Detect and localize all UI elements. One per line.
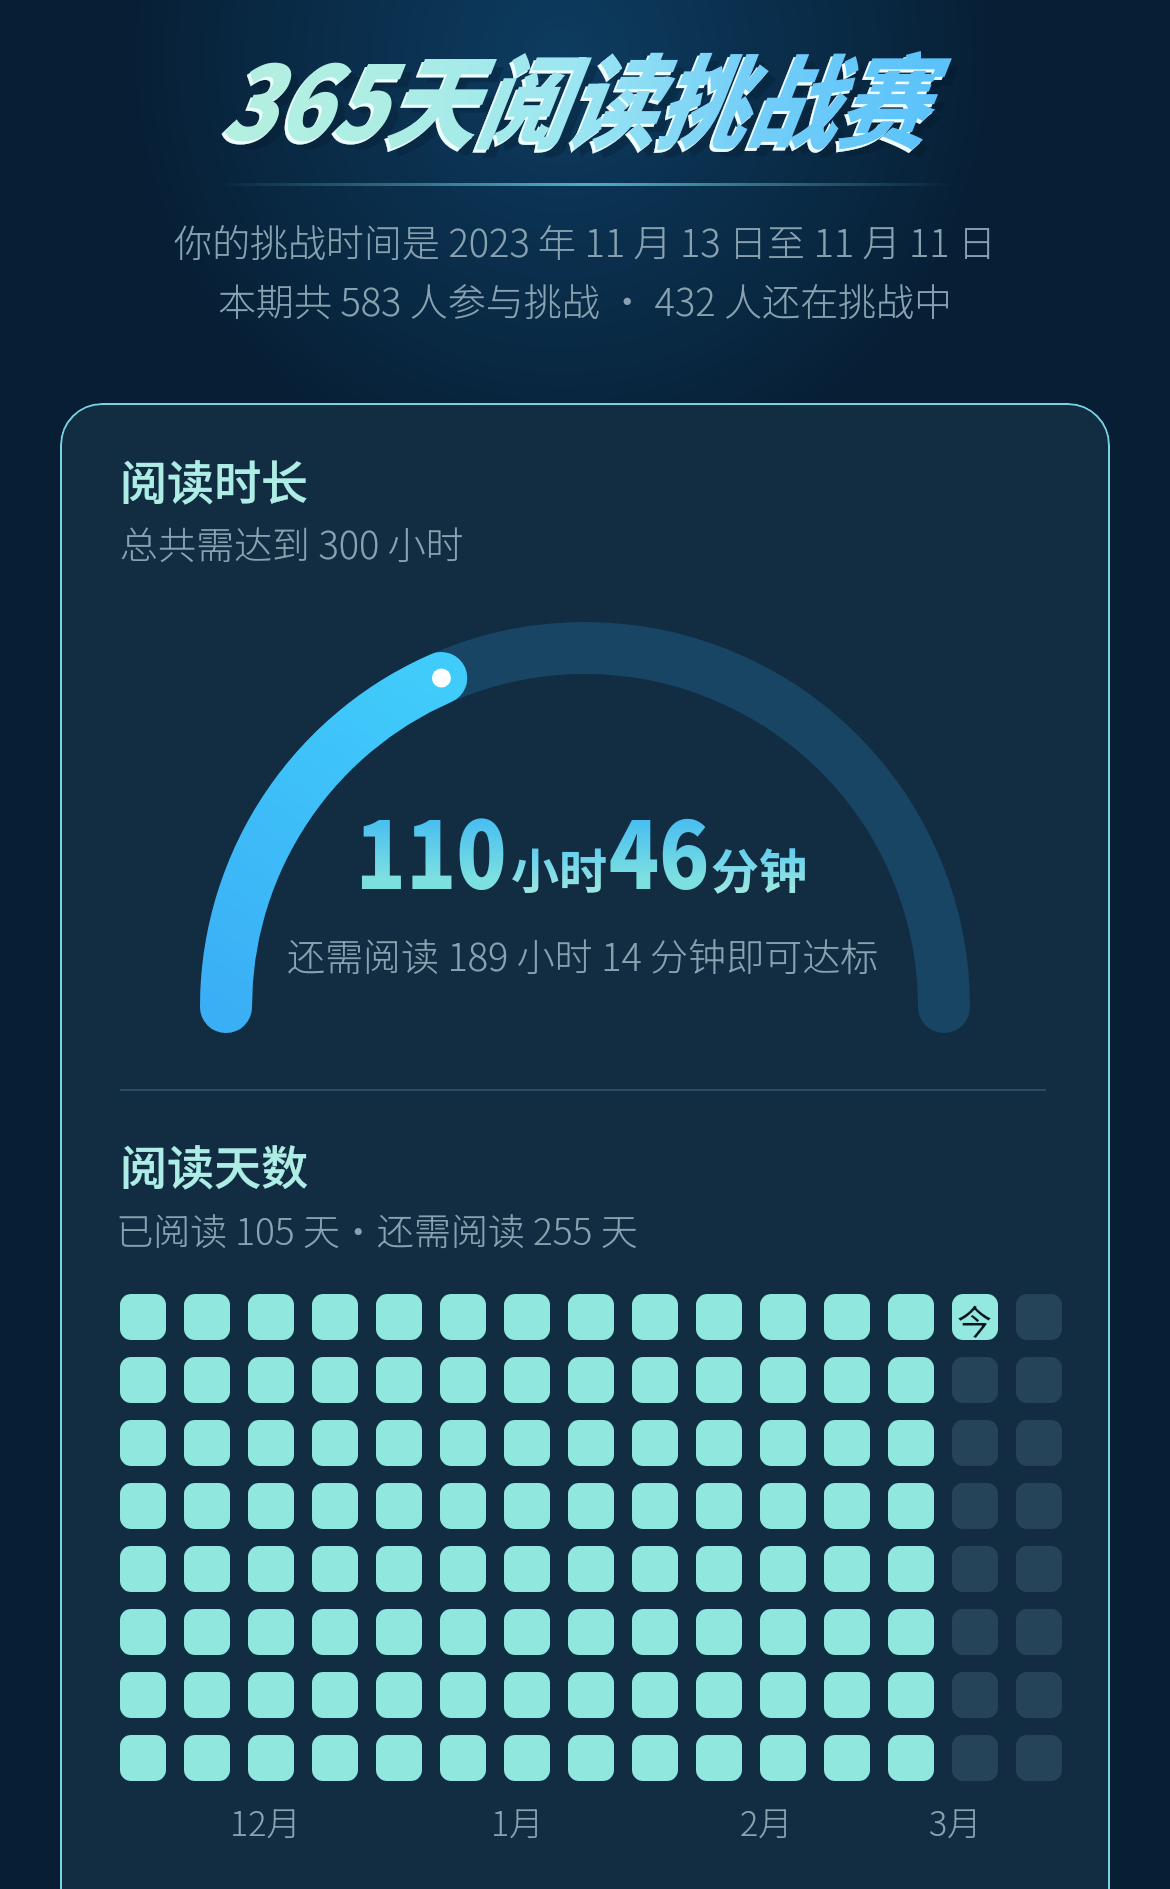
button[interactable] bbox=[312, 1609, 358, 1655]
button[interactable] bbox=[504, 1483, 550, 1529]
button[interactable] bbox=[1016, 1672, 1062, 1718]
button[interactable] bbox=[376, 1294, 422, 1340]
button[interactable] bbox=[888, 1609, 934, 1655]
button[interactable] bbox=[312, 1483, 358, 1529]
button[interactable] bbox=[312, 1420, 358, 1466]
button[interactable] bbox=[632, 1735, 678, 1781]
button[interactable] bbox=[120, 1483, 166, 1529]
button[interactable] bbox=[568, 1672, 614, 1718]
button[interactable] bbox=[824, 1420, 870, 1466]
button[interactable] bbox=[440, 1420, 486, 1466]
button[interactable] bbox=[248, 1672, 294, 1718]
button[interactable] bbox=[888, 1546, 934, 1592]
button[interactable] bbox=[952, 1735, 998, 1781]
button[interactable] bbox=[440, 1735, 486, 1781]
button[interactable] bbox=[376, 1609, 422, 1655]
button[interactable] bbox=[824, 1609, 870, 1655]
button[interactable] bbox=[760, 1546, 806, 1592]
button[interactable] bbox=[824, 1672, 870, 1718]
button[interactable] bbox=[312, 1294, 358, 1340]
button[interactable] bbox=[952, 1420, 998, 1466]
button[interactable] bbox=[120, 1420, 166, 1466]
button[interactable] bbox=[568, 1483, 614, 1529]
button[interactable] bbox=[248, 1735, 294, 1781]
button[interactable] bbox=[760, 1609, 806, 1655]
button[interactable] bbox=[248, 1294, 294, 1340]
button[interactable] bbox=[568, 1735, 614, 1781]
button[interactable] bbox=[632, 1357, 678, 1403]
button[interactable] bbox=[888, 1672, 934, 1718]
button[interactable] bbox=[952, 1672, 998, 1718]
button[interactable] bbox=[568, 1294, 614, 1340]
button[interactable] bbox=[504, 1420, 550, 1466]
button[interactable] bbox=[504, 1546, 550, 1592]
button[interactable] bbox=[504, 1672, 550, 1718]
button[interactable] bbox=[376, 1546, 422, 1592]
button[interactable] bbox=[824, 1483, 870, 1529]
button[interactable] bbox=[760, 1672, 806, 1718]
button[interactable] bbox=[120, 1357, 166, 1403]
button[interactable] bbox=[1016, 1357, 1062, 1403]
button[interactable] bbox=[888, 1357, 934, 1403]
button[interactable] bbox=[376, 1483, 422, 1529]
button[interactable] bbox=[696, 1546, 742, 1592]
button[interactable] bbox=[1016, 1735, 1062, 1781]
button[interactable] bbox=[120, 1735, 166, 1781]
button[interactable] bbox=[696, 1609, 742, 1655]
button[interactable] bbox=[1016, 1294, 1062, 1340]
button[interactable] bbox=[248, 1483, 294, 1529]
button[interactable] bbox=[376, 1420, 422, 1466]
button[interactable] bbox=[952, 1609, 998, 1655]
button[interactable] bbox=[952, 1357, 998, 1403]
button[interactable] bbox=[568, 1420, 614, 1466]
button[interactable] bbox=[696, 1483, 742, 1529]
button[interactable] bbox=[696, 1357, 742, 1403]
button[interactable] bbox=[696, 1294, 742, 1340]
button[interactable] bbox=[120, 1609, 166, 1655]
button[interactable] bbox=[120, 1294, 166, 1340]
button[interactable] bbox=[632, 1420, 678, 1466]
button[interactable] bbox=[184, 1546, 230, 1592]
button[interactable] bbox=[440, 1483, 486, 1529]
button[interactable] bbox=[824, 1357, 870, 1403]
button[interactable] bbox=[888, 1294, 934, 1340]
button[interactable] bbox=[760, 1483, 806, 1529]
button[interactable] bbox=[504, 1735, 550, 1781]
button[interactable] bbox=[824, 1735, 870, 1781]
button[interactable] bbox=[440, 1546, 486, 1592]
button[interactable] bbox=[504, 1357, 550, 1403]
button[interactable] bbox=[888, 1483, 934, 1529]
button[interactable] bbox=[312, 1357, 358, 1403]
button[interactable] bbox=[120, 1672, 166, 1718]
button[interactable] bbox=[120, 1546, 166, 1592]
button[interactable] bbox=[1016, 1609, 1062, 1655]
button[interactable] bbox=[824, 1294, 870, 1340]
button[interactable] bbox=[632, 1546, 678, 1592]
button[interactable] bbox=[248, 1420, 294, 1466]
button[interactable] bbox=[184, 1609, 230, 1655]
button[interactable] bbox=[952, 1546, 998, 1592]
button[interactable] bbox=[248, 1546, 294, 1592]
button[interactable] bbox=[376, 1735, 422, 1781]
button[interactable] bbox=[824, 1546, 870, 1592]
button[interactable] bbox=[184, 1420, 230, 1466]
button[interactable] bbox=[440, 1294, 486, 1340]
button[interactable] bbox=[568, 1609, 614, 1655]
button[interactable] bbox=[760, 1357, 806, 1403]
button[interactable] bbox=[1016, 1420, 1062, 1466]
button[interactable]: 今 bbox=[952, 1294, 998, 1340]
button[interactable] bbox=[440, 1609, 486, 1655]
button[interactable] bbox=[184, 1735, 230, 1781]
button[interactable] bbox=[504, 1609, 550, 1655]
button[interactable] bbox=[184, 1357, 230, 1403]
button[interactable] bbox=[440, 1672, 486, 1718]
button[interactable] bbox=[696, 1735, 742, 1781]
button[interactable] bbox=[376, 1672, 422, 1718]
button[interactable] bbox=[952, 1483, 998, 1529]
button[interactable] bbox=[1016, 1546, 1062, 1592]
button[interactable] bbox=[696, 1672, 742, 1718]
button[interactable] bbox=[632, 1294, 678, 1340]
button[interactable] bbox=[632, 1483, 678, 1529]
button[interactable] bbox=[312, 1735, 358, 1781]
button[interactable] bbox=[312, 1546, 358, 1592]
